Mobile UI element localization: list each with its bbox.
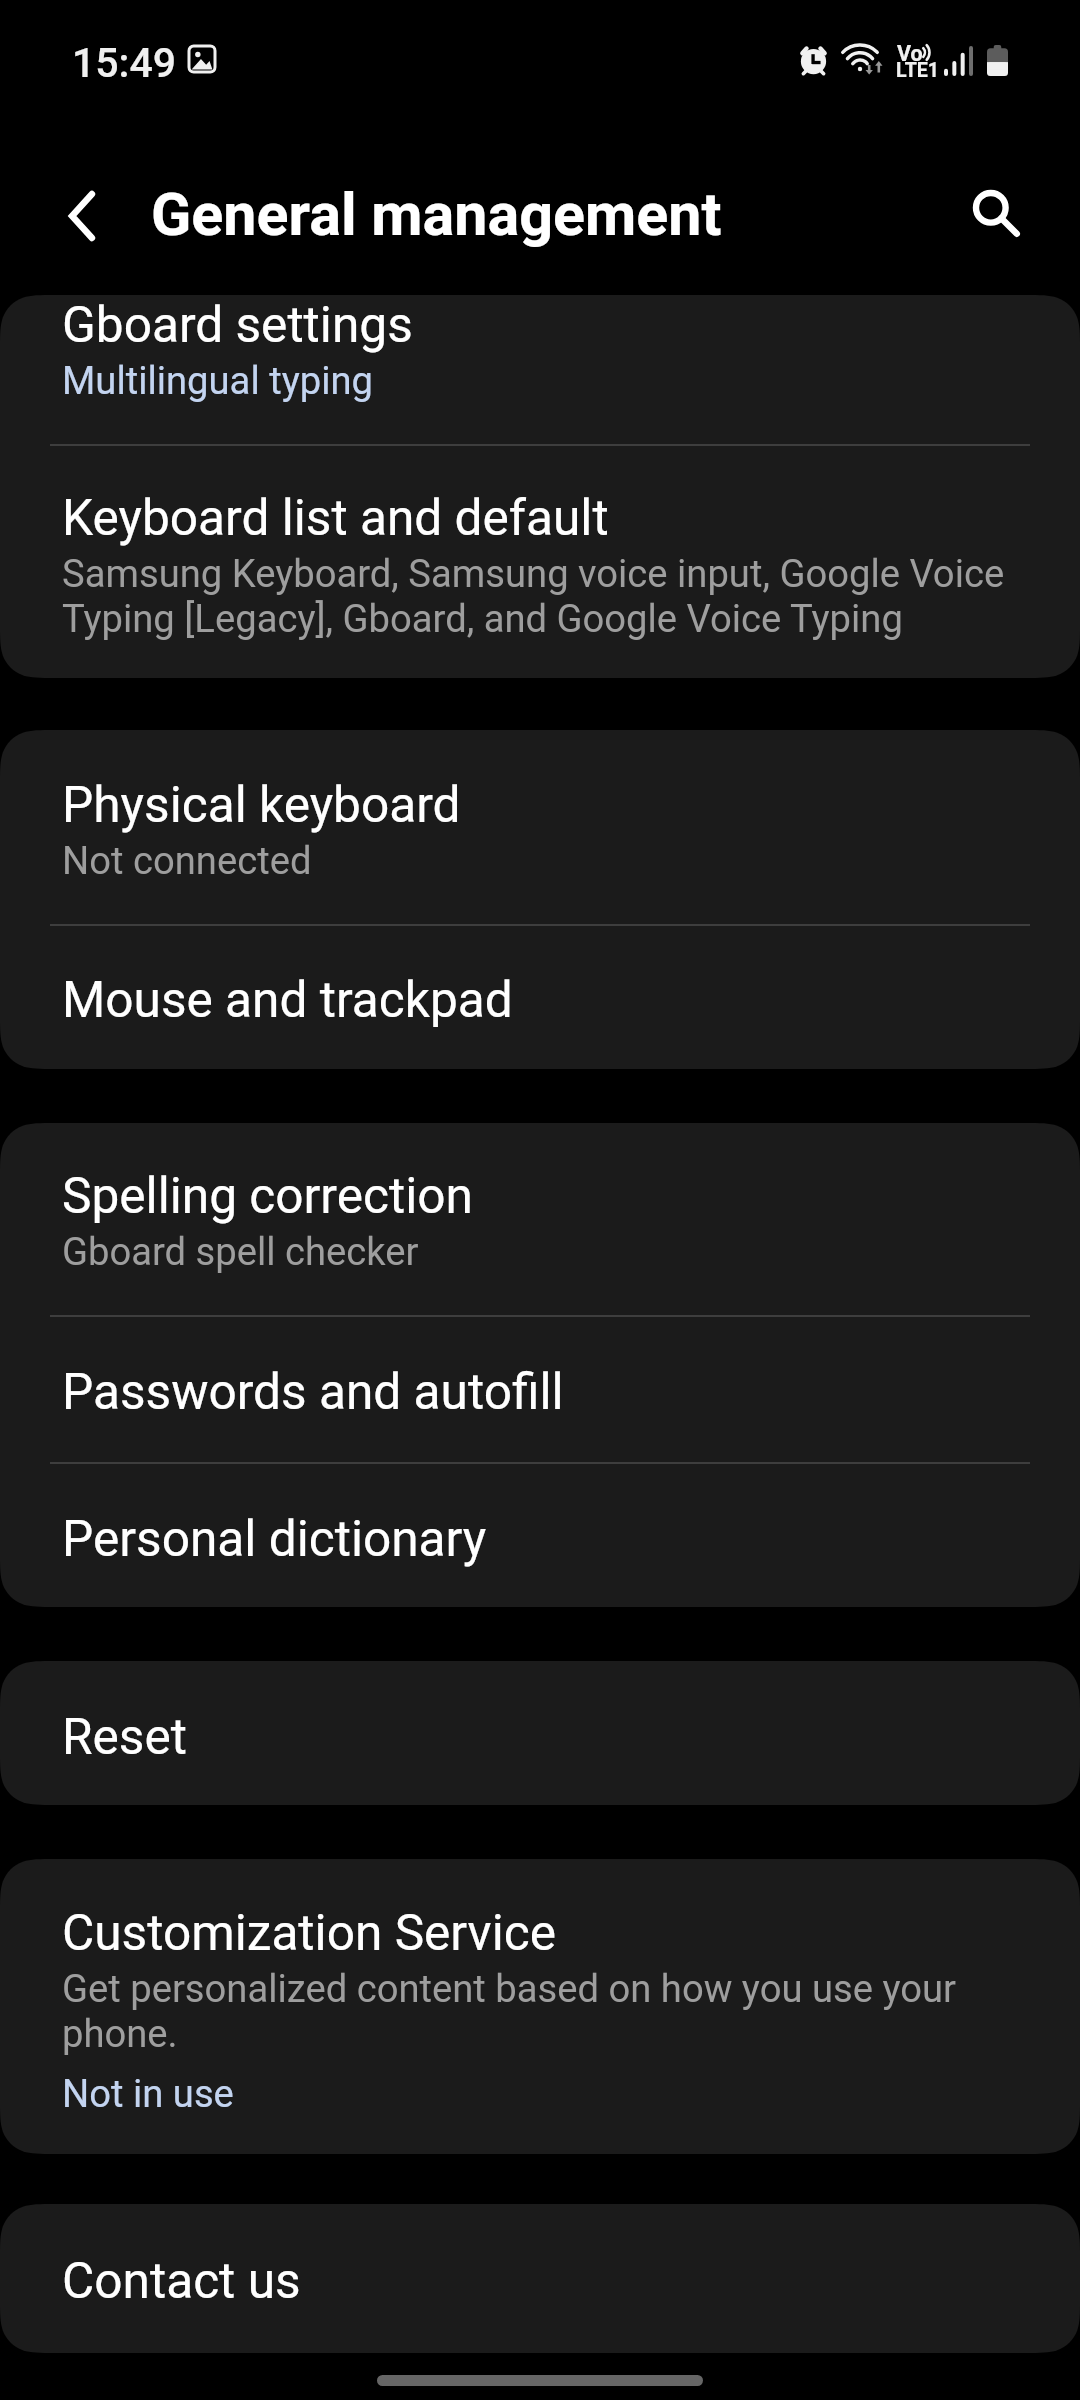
button[interactable]: Reset	[0, 1661, 1080, 1805]
button[interactable]: Personal dictionary	[0, 1464, 1080, 1607]
button[interactable]: Search	[943, 161, 1048, 266]
staticText: Mouse and trackpad	[62, 971, 513, 1029]
button[interactable]: Gboard settings	[0, 295, 1080, 443]
staticText: Not in use	[62, 2072, 234, 2117]
button[interactable]: Spelling correction	[0, 1123, 1080, 1314]
staticText: Physical keyboard	[62, 776, 461, 834]
staticText: Gboard spell checker	[62, 1230, 419, 1275]
button[interactable]: Mouse and trackpad	[0, 926, 1080, 1069]
staticText: Gboard settings	[62, 296, 413, 354]
staticText: LTE1	[896, 59, 940, 82]
button[interactable]: Customization Service	[0, 1859, 1080, 2154]
button[interactable]: Passwords and autofill	[0, 1317, 1080, 1461]
button[interactable]: Keyboard list and default	[0, 446, 1080, 678]
button[interactable]: Contact us	[0, 2204, 1080, 2353]
staticText: Spelling correction	[62, 1167, 473, 1225]
staticText: General management	[151, 180, 722, 249]
staticText: Personal dictionary	[62, 1510, 487, 1568]
staticText: 15:49	[72, 39, 177, 87]
button[interactable]: Physical keyboard	[0, 730, 1080, 923]
staticText: Multilingual typing	[62, 359, 373, 404]
staticText: Samsung Keyboard, Samsung voice input, G…	[62, 552, 1018, 642]
staticText: Passwords and autofill	[62, 1363, 564, 1421]
staticText: Keyboard list and default	[62, 489, 609, 547]
button[interactable]: Navigate up	[29, 163, 134, 268]
staticText: Contact us	[62, 2252, 301, 2310]
staticText: Vo	[897, 41, 923, 66]
staticText: Get personalized content based on how yo…	[62, 1967, 1018, 2057]
staticText: Customization Service	[62, 1904, 556, 1962]
staticText: Not connected	[62, 839, 312, 884]
staticText: Reset	[62, 1708, 187, 1766]
